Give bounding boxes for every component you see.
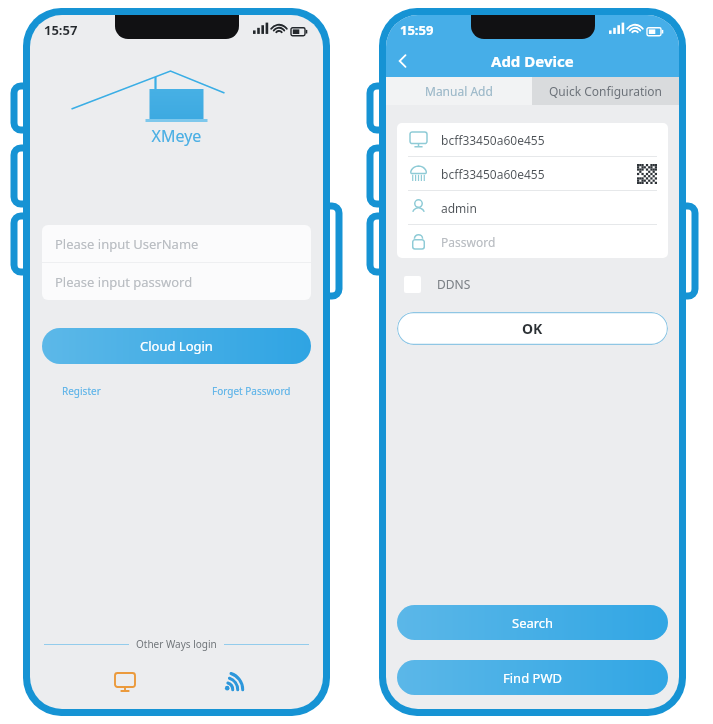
- button[interactable]: Please input password: [42, 263, 311, 300]
- staticText: Search: [512, 614, 554, 632]
- staticText: Please input password: [55, 273, 193, 291]
- button[interactable]: Back: [386, 45, 420, 77]
- button[interactable]: Local device login: [108, 665, 142, 699]
- staticText: XMeye: [30, 125, 323, 147]
- button[interactable]: Register: [58, 380, 105, 402]
- staticText: Quick Configuration: [549, 83, 663, 99]
- staticText: bcff33450a60e455: [441, 132, 545, 148]
- staticText: Forget Password: [212, 384, 291, 398]
- button[interactable]: OK: [397, 312, 668, 345]
- button[interactable]: Forget Password: [208, 380, 295, 402]
- button[interactable]: WiFi login: [212, 665, 246, 699]
- staticText: Other Ways login: [136, 637, 217, 651]
- button[interactable]: Manual Add: [386, 77, 532, 105]
- staticText: 15:57: [44, 21, 78, 39]
- button[interactable]: Please input UserName: [42, 225, 311, 262]
- staticText: Register: [62, 384, 101, 398]
- staticText: Password: [441, 234, 496, 250]
- button[interactable]: Search: [397, 605, 668, 640]
- staticText: 15:59: [400, 21, 434, 39]
- staticText: admin: [441, 200, 477, 216]
- staticText: Find PWD: [503, 669, 562, 687]
- staticText: Add Device: [491, 51, 574, 71]
- staticText: bcff33450a60e455: [441, 166, 545, 182]
- staticText: Cloud Login: [140, 337, 213, 355]
- button[interactable]: admin: [397, 191, 668, 224]
- button[interactable]: Find PWD: [397, 660, 668, 695]
- button[interactable]: Cloud Login: [42, 328, 311, 364]
- staticText: OK: [522, 319, 543, 338]
- button[interactable]: DDNS: [404, 268, 471, 300]
- button[interactable]: bcff33450a60e455: [397, 157, 668, 190]
- staticText: Manual Add: [425, 83, 493, 99]
- button[interactable]: bcff33450a60e455: [397, 123, 668, 156]
- button[interactable]: Scan QR code: [636, 163, 658, 185]
- staticText: Please input UserName: [55, 235, 199, 253]
- button[interactable]: Password: [397, 225, 668, 258]
- staticText: DDNS: [437, 276, 471, 292]
- button[interactable]: Quick Configuration: [532, 77, 679, 105]
